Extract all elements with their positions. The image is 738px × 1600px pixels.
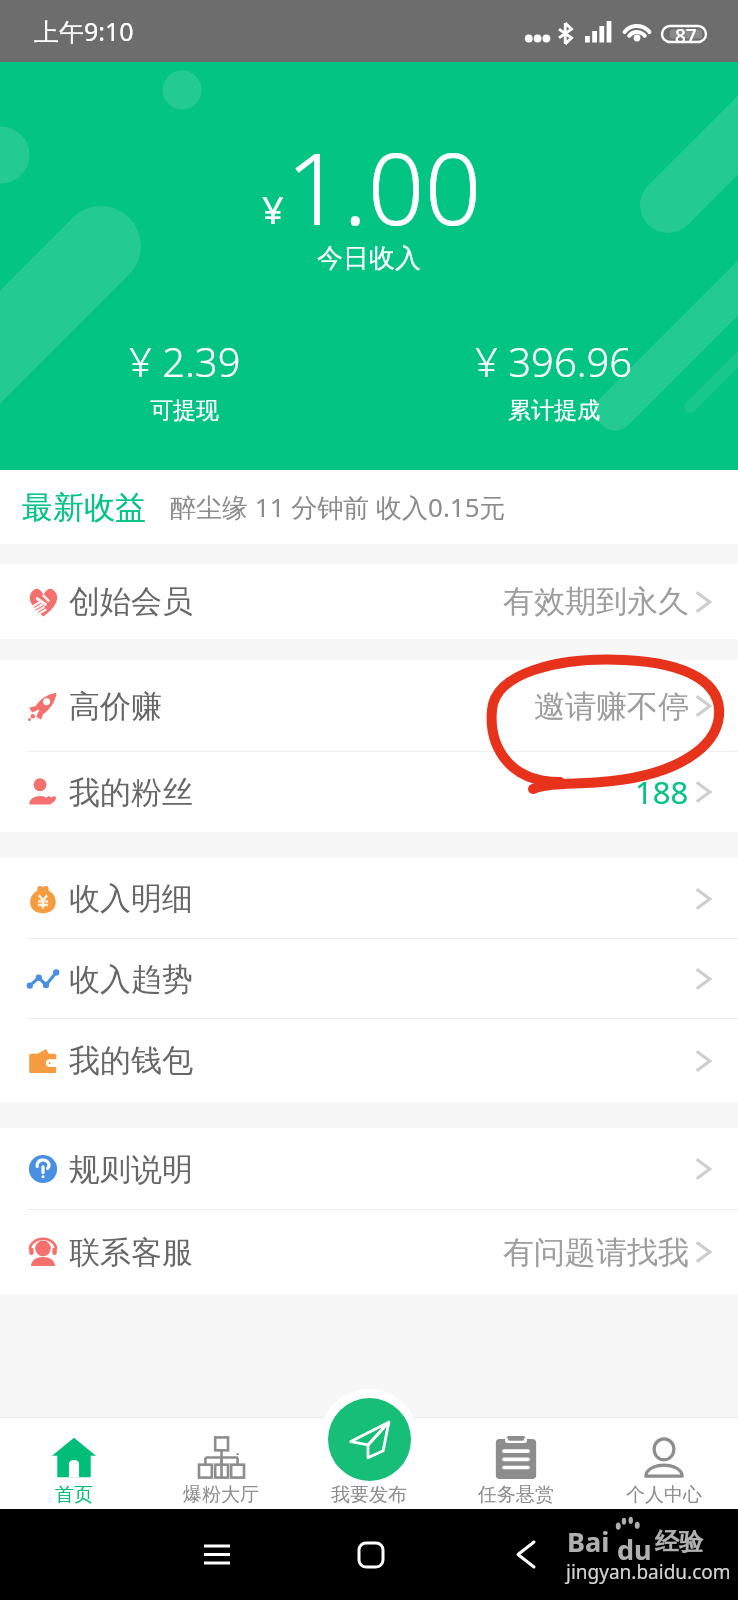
button[interactable]: 收入趋势 (0, 939, 738, 1019)
button[interactable]: 联系客服 (0, 1210, 738, 1294)
staticText: 我的粉丝 (69, 773, 193, 812)
staticText: du (617, 1531, 652, 1568)
button[interactable]: 高价赚 (0, 660, 738, 752)
button[interactable]: 我要发布 (295, 1382, 443, 1509)
staticText: 收入明细 (69, 879, 193, 918)
button[interactable]: 首页 (0, 1417, 147, 1509)
staticText: 经验 (655, 1527, 703, 1557)
staticText: 邀请赚不停 (534, 687, 689, 726)
button[interactable]: 我的粉丝 (0, 752, 738, 832)
button[interactable]: 任务悬赏 (442, 1417, 590, 1509)
staticText: 可提现 (150, 396, 219, 425)
staticText: 有问题请找我 (503, 1233, 689, 1272)
staticText: ¥ 396.96 (475, 334, 633, 388)
staticText: Bai (567, 1523, 610, 1560)
staticText: 1.00 (286, 118, 482, 254)
button[interactable]: 最新收益 (0, 470, 738, 544)
button[interactable]: 个人中心 (590, 1417, 738, 1509)
staticText: 醉尘缘 11 分钟前 收入0.15元 (170, 489, 506, 525)
button[interactable]: 爆粉大厅 (147, 1417, 294, 1509)
staticText: 有效期到永久 (503, 582, 689, 621)
staticText: 爆粉大厅 (183, 1483, 259, 1507)
staticText: 个人中心 (626, 1483, 702, 1507)
staticText: 任务悬赏 (478, 1483, 554, 1507)
button[interactable]: 我的钱包 (0, 1019, 738, 1102)
staticText: 最新收益 (22, 488, 146, 527)
staticText: 今日收入 (317, 242, 421, 275)
button[interactable]: 规则说明 (0, 1128, 738, 1210)
staticText: ¥ 2.39 (129, 334, 241, 388)
staticText: 创始会员 (69, 582, 193, 621)
staticText: 规则说明 (69, 1150, 193, 1189)
button[interactable]: 收入明细 (0, 858, 738, 939)
staticText: 高价赚 (69, 687, 162, 726)
staticText: 我要发布 (331, 1483, 407, 1507)
staticText: ¥ (262, 183, 284, 235)
staticText: 收入趋势 (69, 960, 193, 999)
staticText: 188 (635, 771, 689, 813)
staticText: jingyan.baidu.com (566, 1559, 731, 1585)
staticText: 首页 (55, 1483, 93, 1507)
staticText: 87 (675, 23, 697, 49)
staticText: 上午9:10 (34, 14, 134, 48)
staticText: 我的钱包 (69, 1041, 193, 1080)
button[interactable]: 创始会员 (0, 564, 738, 639)
staticText: 联系客服 (69, 1233, 193, 1272)
staticText: 累计提成 (508, 396, 600, 425)
